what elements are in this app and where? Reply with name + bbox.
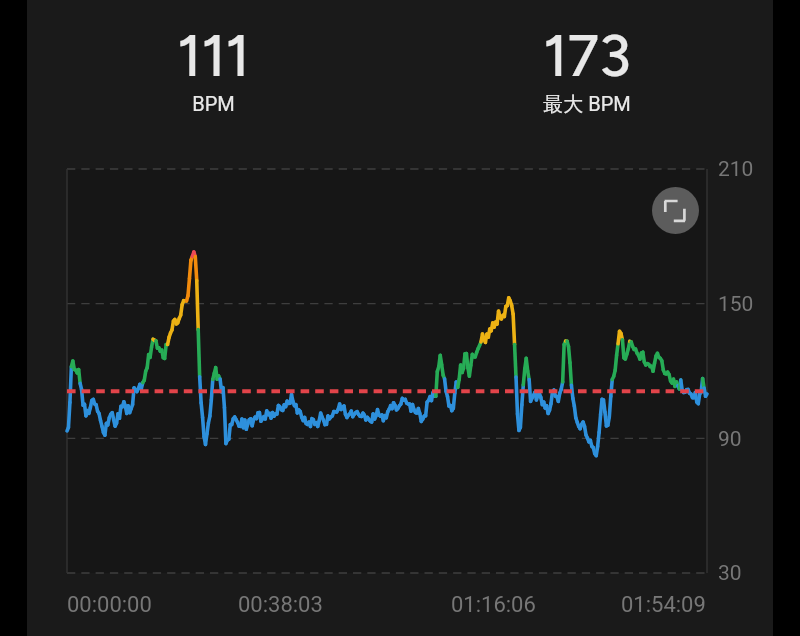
staticText: 01:54:09	[621, 592, 706, 618]
staticText: 01:16:06	[451, 592, 536, 618]
staticText: 173	[543, 21, 631, 91]
staticText: 150	[718, 292, 754, 317]
button[interactable]: Fullscreen	[652, 187, 699, 234]
staticText: 最大 BPM	[543, 92, 631, 117]
staticText: 210	[718, 157, 754, 182]
staticText: 30	[718, 561, 742, 586]
staticText: 00:38:03	[238, 592, 323, 618]
staticText: BPM	[192, 92, 235, 115]
staticText: 90	[718, 427, 742, 452]
staticText: 111	[177, 21, 250, 91]
staticText: 00:00:00	[67, 592, 152, 618]
